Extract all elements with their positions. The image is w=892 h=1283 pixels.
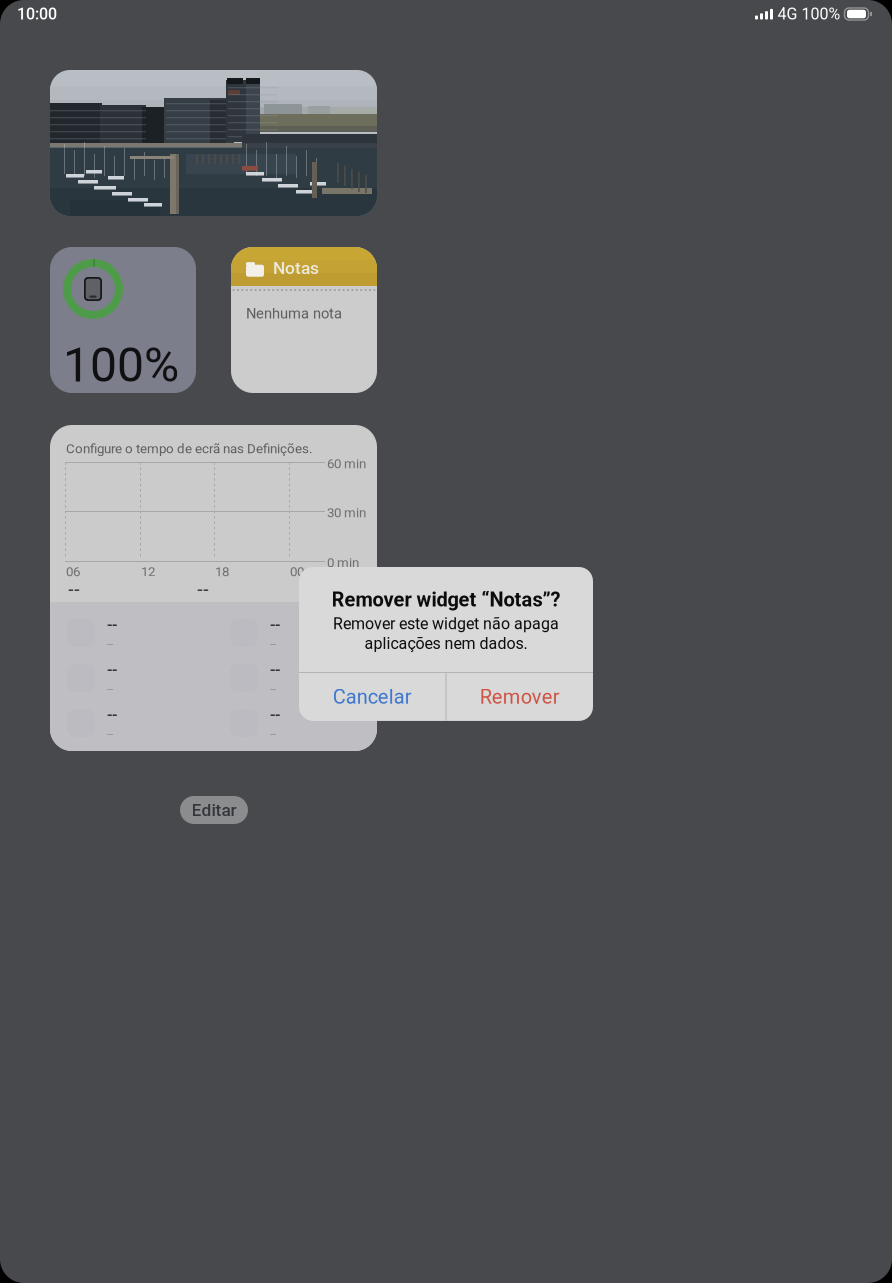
staticText: -- xyxy=(197,579,209,599)
staticText: Notas xyxy=(273,258,319,278)
staticText: Configure o tempo de ecrã nas Definições… xyxy=(66,441,313,457)
staticText: Nenhuma nota xyxy=(246,305,342,322)
staticText: Remover xyxy=(480,685,560,709)
staticText: Editar xyxy=(191,800,236,820)
staticText: 4G 100% xyxy=(773,5,844,23)
button[interactable]: Baterias, 100% xyxy=(50,247,196,393)
button[interactable]: Editar xyxy=(180,796,248,824)
staticText: aplicações nem dados. xyxy=(364,634,527,653)
staticText: -- xyxy=(107,705,117,724)
staticText: -- xyxy=(270,660,280,679)
staticText: 00 xyxy=(290,564,304,580)
button[interactable]: Tempo de ecrã xyxy=(50,425,377,751)
staticText: Remover este widget não apaga xyxy=(333,614,559,633)
staticText: -- xyxy=(270,682,276,696)
staticText: 12 xyxy=(141,564,155,580)
staticText: Remover widget “Notas”? xyxy=(331,588,560,611)
staticText: -- xyxy=(107,727,113,741)
staticText: -- xyxy=(107,637,113,651)
button[interactable]: Fotografias xyxy=(50,70,377,216)
staticText: -- xyxy=(270,727,276,741)
staticText: 10:00 xyxy=(17,5,57,23)
staticText: 60 min xyxy=(327,456,366,472)
staticText: -- xyxy=(107,660,117,679)
staticText: -- xyxy=(107,615,117,634)
button[interactable]: Cancelar xyxy=(299,673,445,721)
button[interactable]: Remover xyxy=(446,673,593,721)
staticText: 30 min xyxy=(327,505,366,521)
staticText: -- xyxy=(68,579,80,599)
staticText: -- xyxy=(270,637,276,651)
staticText: 0 min xyxy=(327,555,359,571)
staticText: 18 xyxy=(215,564,229,580)
staticText: -- xyxy=(107,682,113,696)
staticText: 06 xyxy=(66,564,80,580)
staticText: -- xyxy=(270,615,280,634)
staticText: -- xyxy=(270,705,280,724)
staticText: 100% xyxy=(63,337,179,393)
button[interactable]: Notas, nenhuma nota xyxy=(231,247,377,393)
staticText: Cancelar xyxy=(333,685,412,709)
